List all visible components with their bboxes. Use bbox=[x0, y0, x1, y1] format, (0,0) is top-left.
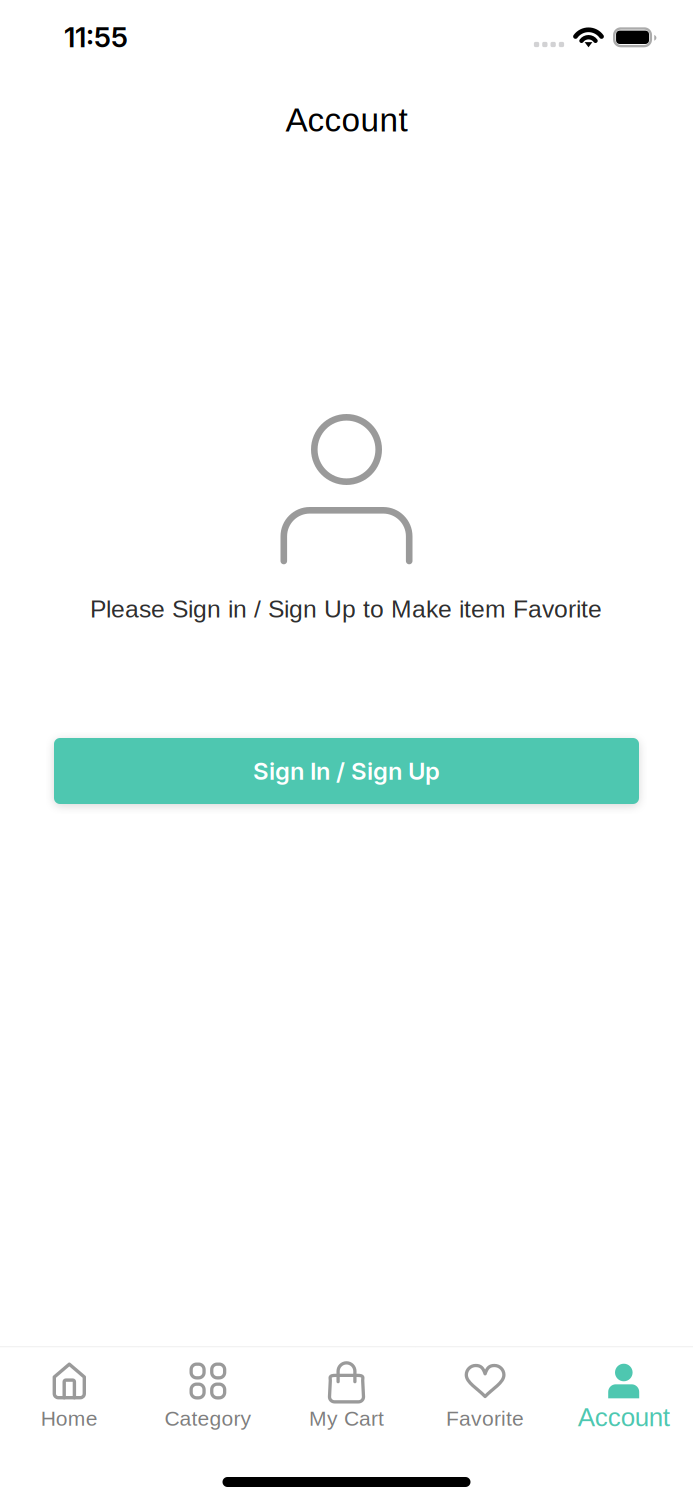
staticText: Account bbox=[285, 101, 407, 139]
staticText: Category bbox=[164, 1407, 251, 1430]
staticText: Home bbox=[41, 1407, 98, 1430]
staticText: Please Sign in / Sign Up to Make item Fa… bbox=[90, 595, 602, 623]
button[interactable]: Category bbox=[139, 1347, 277, 1444]
button[interactable]: Account bbox=[554, 1347, 693, 1444]
staticText: Favorite bbox=[446, 1407, 524, 1430]
button[interactable]: Sign In / Sign Up bbox=[54, 738, 639, 804]
staticText: Sign In / Sign Up bbox=[253, 756, 440, 785]
staticText: My Cart bbox=[309, 1407, 384, 1430]
staticText: 11:55 bbox=[64, 20, 128, 54]
button[interactable]: Home bbox=[0, 1347, 139, 1444]
button[interactable]: My Cart bbox=[277, 1347, 416, 1444]
button[interactable]: Favorite bbox=[416, 1347, 554, 1444]
staticText: Account bbox=[578, 1403, 670, 1432]
